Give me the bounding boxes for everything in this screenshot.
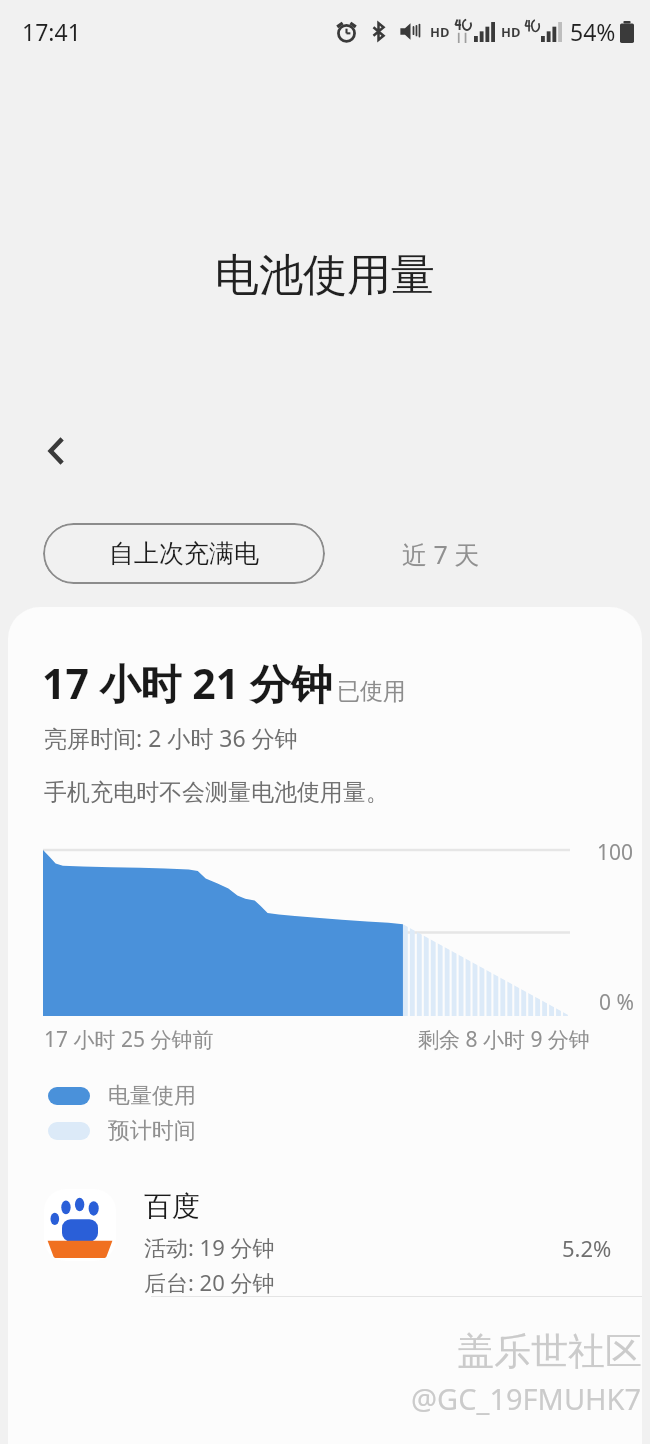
staticText: 剩余 8 小时 9 分钟 xyxy=(418,1025,590,1054)
staticText: 17 小时 25 分钟前 xyxy=(44,1025,214,1054)
staticText: HD xyxy=(501,23,521,41)
staticText: 自上次充满电 xyxy=(109,538,259,569)
staticText: HD xyxy=(430,23,450,41)
staticText: 亮屏时间: 2 小时 36 分钟 xyxy=(44,722,298,753)
button[interactable]: Back xyxy=(28,422,86,480)
staticText: 预计时间 xyxy=(108,1117,196,1145)
button[interactable]: 近 7 天 xyxy=(402,523,480,584)
staticText: 电量使用 xyxy=(108,1082,196,1110)
staticText: 百度 xyxy=(144,1189,200,1224)
staticText: 5.2% xyxy=(562,1233,612,1263)
button[interactable]: 百度 xyxy=(8,1189,642,1297)
staticText: 活动: 19 分钟 xyxy=(144,1232,275,1262)
staticText: 17:41 xyxy=(22,16,81,47)
button[interactable]: 自上次充满电 xyxy=(43,523,325,584)
staticText: 后台: 20 分钟 xyxy=(144,1267,275,1297)
staticText: 已使用 xyxy=(337,677,406,706)
staticText: 54% xyxy=(570,16,616,47)
staticText: 手机充电时不会测量电池使用量。 xyxy=(44,778,389,807)
staticText: 0 % xyxy=(599,988,634,1017)
staticText: 100 xyxy=(597,838,634,867)
staticText: 近 7 天 xyxy=(402,537,480,571)
staticText: 盖乐世社区 xyxy=(457,1328,642,1375)
staticText: 电池使用量 xyxy=(215,248,435,303)
staticText: 17 小时 21 分钟 xyxy=(42,655,332,711)
staticText: @GC_19FMUHK7 xyxy=(411,1379,642,1418)
